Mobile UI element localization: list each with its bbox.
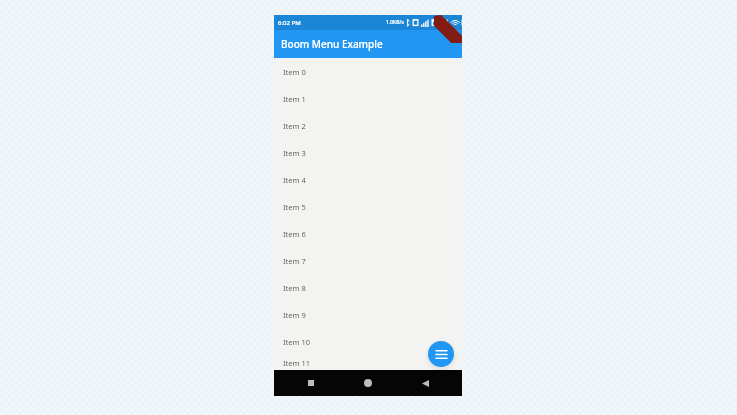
button[interactable]: Item 10: [274, 328, 462, 355]
button[interactable]: Item 0: [274, 58, 462, 85]
button[interactable]: Item 7: [274, 247, 462, 274]
button[interactable]: Item 11: [274, 355, 462, 370]
staticText: Item 9: [283, 310, 306, 320]
button[interactable]: Boom Menu Example: [274, 30, 462, 58]
button[interactable]: Back: [405, 370, 445, 396]
button[interactable]: Item 5: [274, 193, 462, 220]
staticText: Item 11: [283, 358, 311, 368]
button[interactable]: Item 8: [274, 274, 462, 301]
staticText: Item 1: [283, 94, 306, 104]
button[interactable]: Item 4: [274, 166, 462, 193]
staticText: Item 2: [283, 121, 306, 131]
staticText: Item 7: [283, 256, 306, 266]
staticText: Item 6: [283, 229, 306, 239]
button[interactable]: Item 1: [274, 85, 462, 112]
staticText: 1.0KB/s: [386, 19, 404, 26]
staticText: 6:02 PM: [278, 19, 301, 27]
staticText: Item 4: [283, 175, 306, 185]
button[interactable]: Item 6: [274, 220, 462, 247]
staticText: Item 10: [283, 337, 311, 347]
button[interactable]: Open boom menu: [428, 341, 454, 367]
staticText: Boom Menu Example: [281, 37, 383, 51]
staticText: Item 5: [283, 202, 306, 212]
staticText: Item 3: [283, 148, 306, 158]
button[interactable]: Item 9: [274, 301, 462, 328]
button[interactable]: Item 2: [274, 112, 462, 139]
button[interactable]: Item 3: [274, 139, 462, 166]
staticText: Item 0: [283, 67, 306, 77]
button[interactable]: Recent apps: [291, 370, 331, 396]
staticText: Item 8: [283, 283, 306, 293]
button[interactable]: Home: [348, 370, 388, 396]
